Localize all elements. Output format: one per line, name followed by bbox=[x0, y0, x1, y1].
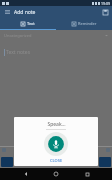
staticText: Text notes bbox=[6, 49, 31, 56]
button[interactable]: Save bbox=[99, 157, 111, 167]
button[interactable]: Save note bbox=[101, 8, 109, 16]
staticText: Speak... bbox=[47, 121, 66, 128]
button[interactable]: Reminder bbox=[56, 18, 112, 29]
staticText: Text bbox=[27, 21, 35, 26]
staticText: Uncategorized bbox=[4, 33, 32, 38]
staticText: Reminder bbox=[78, 21, 97, 26]
button[interactable]: Home bbox=[51, 169, 61, 179]
button[interactable]: Speak bbox=[44, 132, 68, 156]
button[interactable]: Back bbox=[21, 169, 31, 179]
button[interactable]: Recents bbox=[82, 169, 92, 179]
button[interactable]: Cancel bbox=[1, 157, 13, 167]
button[interactable]: Navigation menu bbox=[3, 8, 11, 16]
staticText: CLOSE bbox=[50, 158, 63, 163]
button[interactable]: CLOSE bbox=[46, 157, 67, 164]
staticText: 19:09 bbox=[101, 1, 110, 6]
button[interactable]: Text bbox=[0, 18, 56, 29]
staticText: Add note bbox=[14, 9, 36, 16]
